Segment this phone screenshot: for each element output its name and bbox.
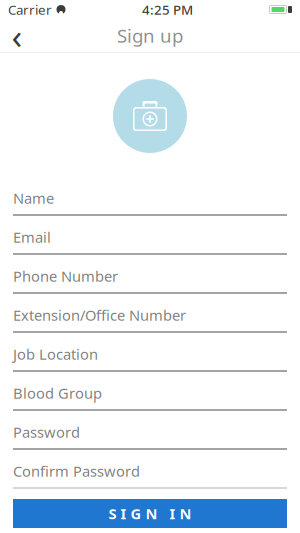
button[interactable]: Password — [0, 411, 300, 450]
button[interactable]: Phone Number — [0, 255, 300, 294]
button[interactable]: Email — [0, 216, 300, 255]
staticText: Extension/Office Number — [13, 305, 186, 325]
staticText: Password — [13, 422, 80, 442]
button[interactable]: S I G N I N — [0, 499, 300, 528]
staticText: ‹ — [11, 12, 22, 58]
staticText: S I G N I N — [108, 504, 191, 523]
staticText: Blood Group — [13, 383, 102, 403]
button[interactable]: Extension/Office Number — [0, 294, 300, 333]
button[interactable]: Back — [0, 19, 34, 52]
button[interactable]: Job Location — [0, 333, 300, 372]
staticText: Job Location — [13, 344, 98, 364]
staticText: Carrier — [8, 1, 52, 18]
button[interactable]: Name — [0, 177, 300, 216]
staticText: Sign up — [117, 23, 183, 48]
staticText: Phone Number — [13, 266, 118, 286]
staticText: 4:25 PM — [142, 1, 193, 18]
staticText: Email — [13, 227, 51, 247]
staticText: Confirm Password — [13, 461, 140, 481]
button[interactable]: Add profile photo — [113, 79, 187, 153]
button[interactable]: Confirm Password — [0, 450, 300, 489]
button[interactable]: Blood Group — [0, 372, 300, 411]
staticText: Name — [13, 188, 54, 208]
